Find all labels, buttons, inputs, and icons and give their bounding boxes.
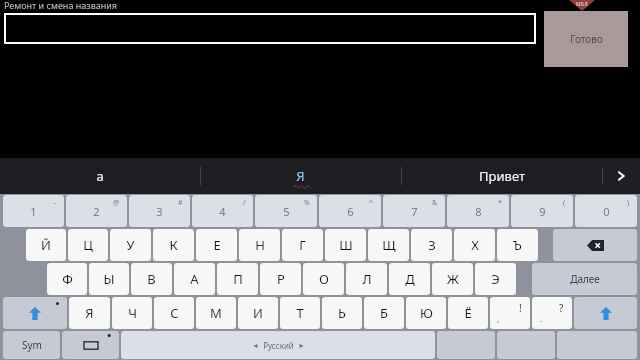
staticText: С — [170, 304, 179, 322]
staticText: Ь — [338, 304, 346, 322]
button[interactable]: . — [532, 297, 572, 329]
staticText: MIUI — [576, 1, 588, 8]
button[interactable]: Ё — [448, 297, 488, 329]
button[interactable]: More suggestions — [602, 158, 640, 194]
staticText: Д — [405, 270, 415, 288]
staticText: 8 — [475, 204, 482, 219]
button[interactable]: Я — [69, 297, 110, 329]
staticText: Ж — [447, 270, 459, 288]
staticText: 0 — [603, 204, 610, 219]
button[interactable]: 4 — [192, 195, 253, 227]
button[interactable]: Ф — [47, 263, 87, 295]
button[interactable]: Б — [364, 297, 404, 329]
staticText: # — [178, 198, 183, 208]
button[interactable]: 1 — [3, 195, 64, 227]
button[interactable]: Р — [260, 263, 301, 295]
button[interactable]: Switch keyboard — [62, 331, 119, 359]
staticText: Sym — [22, 338, 42, 352]
staticText: . — [540, 312, 543, 324]
staticText: / — [243, 198, 246, 208]
button[interactable]: Shift — [574, 297, 637, 329]
staticText: Ремонт и смена названия — [4, 0, 118, 11]
button[interactable]: Ь — [322, 297, 362, 329]
staticText: ! — [519, 301, 522, 315]
button[interactable]: К — [153, 229, 194, 261]
staticText: 4 — [219, 204, 226, 219]
staticText: Т — [296, 304, 304, 322]
button[interactable]: 7 — [383, 195, 445, 227]
button[interactable]: Ю — [406, 297, 446, 329]
button[interactable]: а — [0, 158, 200, 194]
staticText: Н — [255, 236, 265, 254]
button[interactable]: ◂ — [121, 331, 435, 359]
button[interactable]: 6 — [319, 195, 381, 227]
button[interactable]: Ж — [432, 263, 473, 295]
button[interactable]: 8 — [447, 195, 509, 227]
staticText: П — [233, 270, 243, 288]
button[interactable]: Д — [389, 263, 430, 295]
staticText: , — [497, 312, 500, 324]
staticText: Ё — [464, 304, 472, 322]
button[interactable]: Э — [475, 263, 516, 295]
button[interactable]: Щ — [368, 229, 409, 261]
staticText: Х — [471, 236, 479, 254]
button[interactable]: 3 — [129, 195, 190, 227]
staticText: Е — [213, 236, 221, 254]
button[interactable]: , — [490, 297, 530, 329]
staticText: Ъ — [513, 236, 522, 254]
staticText: 7 — [411, 204, 418, 219]
staticText: Ю — [420, 304, 433, 322]
staticText: 6 — [347, 204, 354, 219]
staticText: М — [210, 304, 222, 322]
button[interactable]: Г — [282, 229, 323, 261]
button[interactable]: Л — [346, 263, 387, 295]
button[interactable]: П — [217, 263, 258, 295]
staticText: Л — [362, 270, 372, 288]
button[interactable]: Х — [454, 229, 495, 261]
button[interactable]: Sym — [3, 331, 60, 359]
staticText: 5 — [283, 204, 290, 219]
button[interactable]: Ч — [112, 297, 152, 329]
staticText: ) — [627, 198, 630, 208]
button[interactable]: З — [411, 229, 452, 261]
button[interactable]: Т — [280, 297, 320, 329]
button[interactable]: Ц — [68, 229, 108, 261]
button[interactable]: М — [196, 297, 236, 329]
staticText: ^ — [369, 198, 374, 208]
button[interactable]: 0 — [575, 195, 637, 227]
staticText: Б — [380, 304, 388, 322]
button[interactable]: С — [154, 297, 194, 329]
staticText: - — [54, 198, 57, 208]
button[interactable]: О — [303, 263, 344, 295]
staticText: 1 — [30, 204, 37, 219]
button[interactable]: Ш — [325, 229, 366, 261]
staticText: Русский — [263, 340, 294, 351]
button[interactable]: У — [110, 229, 151, 261]
button[interactable]: Е — [196, 229, 237, 261]
button[interactable]: Ы — [89, 263, 129, 295]
button[interactable]: Shift — [3, 297, 67, 329]
button[interactable]: Ъ — [497, 229, 538, 261]
button[interactable]: Далее — [532, 263, 637, 295]
button[interactable]: Готово — [544, 11, 628, 67]
staticText: @ — [113, 198, 120, 208]
staticText: 3 — [156, 204, 163, 219]
button[interactable]: Н — [239, 229, 280, 261]
button[interactable]: И — [238, 297, 278, 329]
button[interactable] — [4, 13, 536, 44]
button[interactable]: В — [131, 263, 172, 295]
button[interactable]: 9 — [511, 195, 573, 227]
button[interactable]: Backspace — [553, 229, 637, 261]
staticText: Ц — [83, 236, 93, 254]
button[interactable]: Я — [200, 158, 401, 194]
button[interactable]: А — [174, 263, 215, 295]
button[interactable]: 2 — [66, 195, 127, 227]
button[interactable]: Привет — [401, 158, 602, 194]
button[interactable]: 5 — [255, 195, 317, 227]
staticText: % — [304, 198, 310, 208]
staticText: Далее — [570, 272, 600, 286]
button[interactable]: Й — [26, 229, 66, 261]
